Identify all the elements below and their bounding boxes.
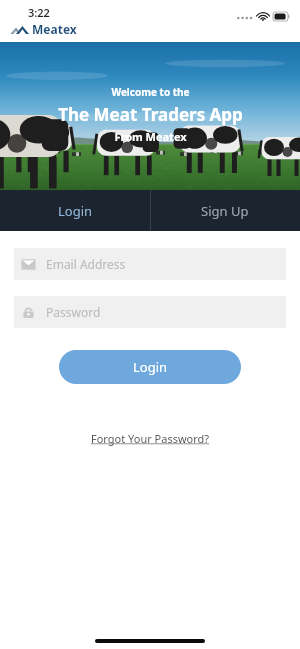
staticText: Forgot Your Password? [91, 431, 210, 446]
staticText: Email Address [46, 256, 126, 272]
button[interactable]: Login [0, 190, 150, 231]
staticText: Login [58, 202, 93, 220]
staticText: 3:22 [28, 5, 50, 20]
staticText: Login [133, 358, 168, 376]
button[interactable]: Forgot Your Password? [85, 428, 216, 449]
staticText: Meatex [32, 21, 77, 37]
button[interactable]: Sign Up [150, 190, 300, 231]
staticText: Password [46, 304, 101, 320]
staticText: From Meatex [114, 129, 187, 144]
staticText: The Meat Traders App [58, 103, 243, 126]
button[interactable]: Login [59, 350, 241, 384]
staticText: Sign Up [201, 202, 249, 220]
button[interactable]: Email Address [14, 248, 286, 280]
button[interactable]: Password [14, 296, 286, 328]
staticText: Welcome to the [111, 85, 190, 99]
